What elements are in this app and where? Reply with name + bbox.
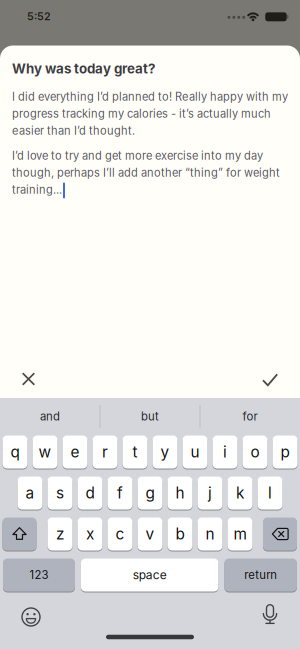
staticText: training...	[12, 183, 62, 196]
button[interactable]: t	[122, 435, 147, 469]
button[interactable]: q	[2, 435, 27, 469]
staticText: b	[175, 525, 184, 543]
staticText: for	[242, 410, 257, 423]
staticText: I’d love to try and get more exercise in…	[12, 149, 263, 162]
staticText: h	[175, 484, 184, 502]
button[interactable]: x	[77, 517, 102, 551]
button[interactable]: d	[77, 476, 102, 510]
staticText: n	[205, 525, 214, 543]
button[interactable]: h	[167, 476, 192, 510]
staticText: easier than I’d thought.	[12, 124, 135, 137]
button[interactable]: l	[257, 476, 282, 510]
button[interactable]: c	[107, 517, 132, 551]
button[interactable]: z	[47, 517, 72, 551]
staticText: e	[70, 443, 79, 461]
button[interactable]: r	[92, 435, 117, 469]
staticText: and	[40, 410, 60, 423]
staticText: r	[102, 443, 108, 461]
staticText: v	[145, 525, 154, 543]
staticText: x	[86, 525, 94, 543]
staticText: u	[190, 443, 199, 461]
staticText: j	[208, 484, 212, 502]
button[interactable]: but	[105, 400, 195, 433]
button[interactable]: e	[62, 435, 87, 469]
button[interactable]	[250, 359, 290, 399]
button[interactable]: j	[197, 476, 222, 510]
staticText: m	[233, 525, 246, 543]
staticText: return	[244, 568, 277, 582]
staticText: 123	[29, 568, 48, 582]
button[interactable]	[13, 599, 49, 635]
staticText: s	[56, 484, 64, 502]
staticText: d	[85, 484, 94, 502]
staticText: space	[133, 568, 167, 582]
staticText: progress tracking my calories - it’s act…	[12, 107, 271, 120]
staticText: t	[132, 443, 137, 461]
staticText: c	[115, 525, 124, 543]
button[interactable]	[252, 598, 288, 634]
button[interactable]: s	[47, 476, 72, 510]
staticText: o	[250, 443, 259, 461]
button[interactable]: k	[227, 476, 252, 510]
button[interactable]: return	[224, 558, 297, 592]
button[interactable]: g	[137, 476, 162, 510]
button[interactable]: i	[212, 435, 237, 469]
staticText: 5:52	[27, 10, 51, 23]
button[interactable]: space	[81, 558, 218, 592]
staticText: p	[280, 443, 289, 461]
button[interactable]: n	[197, 517, 222, 551]
staticText: I did everything I’d planned to! Really …	[12, 90, 288, 103]
staticText: y	[160, 443, 169, 461]
staticText: q	[10, 443, 19, 461]
staticText: l	[268, 484, 272, 502]
button[interactable]: o	[242, 435, 267, 469]
staticText: f	[117, 484, 123, 502]
staticText: though, perhaps I’ll add another “thing”…	[12, 166, 280, 179]
button[interactable]: u	[182, 435, 207, 469]
button[interactable]: p	[272, 435, 297, 469]
button[interactable]	[263, 517, 297, 551]
staticText: but	[141, 410, 159, 423]
staticText: w	[38, 443, 51, 461]
button[interactable]: for	[205, 400, 295, 433]
button[interactable]: b	[167, 517, 192, 551]
staticText: a	[25, 484, 34, 502]
button[interactable]: w	[32, 435, 57, 469]
button[interactable]: and	[5, 400, 95, 433]
button[interactable]: 123	[3, 558, 75, 592]
button[interactable]: v	[137, 517, 162, 551]
button[interactable]	[8, 359, 48, 399]
button[interactable]: f	[107, 476, 132, 510]
button[interactable]: a	[17, 476, 42, 510]
button[interactable]: y	[152, 435, 177, 469]
button[interactable]	[2, 517, 36, 551]
button[interactable]: m	[227, 517, 252, 551]
staticText: z	[56, 525, 64, 543]
staticText: k	[236, 484, 244, 502]
staticText: Why was today great?	[12, 60, 155, 77]
staticText: i	[223, 443, 227, 461]
staticText: g	[145, 484, 154, 502]
